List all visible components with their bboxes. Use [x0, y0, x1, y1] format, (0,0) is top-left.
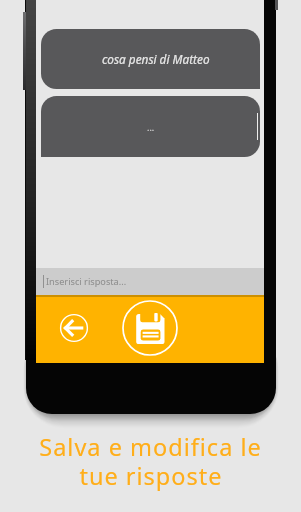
staticText: tue risposte	[79, 460, 223, 492]
button[interactable]: ...	[41, 96, 260, 157]
button[interactable]: cosa pensi di Matteo	[41, 29, 260, 89]
button[interactable]: Save	[121, 299, 179, 357]
staticText: Salva e modifica le	[39, 431, 262, 463]
button[interactable]: Back	[59, 313, 89, 343]
staticText: cosa pensi di Matteo	[102, 51, 210, 67]
staticText: ...	[147, 121, 155, 133]
button[interactable]: Inserisci risposta...	[36, 268, 264, 295]
staticText: Inserisci risposta...	[46, 275, 127, 288]
